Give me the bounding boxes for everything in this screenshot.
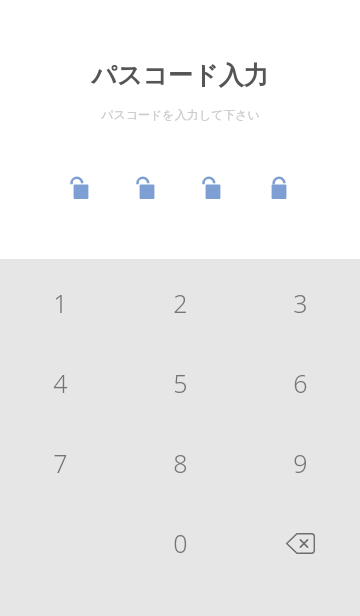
staticText: パスコード入力: [91, 60, 269, 91]
button[interactable]: 3: [240, 263, 360, 343]
button[interactable]: 9: [240, 423, 360, 503]
staticText: 3: [293, 286, 308, 320]
staticText: 9: [293, 446, 308, 480]
button[interactable]: 1: [0, 263, 120, 343]
button[interactable]: 7: [0, 423, 120, 503]
button[interactable]: 4: [0, 343, 120, 423]
staticText: 1: [53, 286, 68, 320]
staticText: 7: [53, 446, 68, 480]
button[interactable]: 5: [120, 343, 240, 423]
staticText: 4: [53, 366, 68, 400]
button[interactable]: 8: [120, 423, 240, 503]
button[interactable]: 6: [240, 343, 360, 423]
button[interactable]: Backspace: [240, 503, 360, 583]
button[interactable]: 2: [120, 263, 240, 343]
button[interactable]: 0: [120, 503, 240, 583]
staticText: 2: [173, 286, 188, 320]
staticText: 0: [173, 526, 188, 560]
staticText: 6: [293, 366, 308, 400]
staticText: パスコードを入力して下さい: [101, 107, 260, 122]
staticText: 8: [173, 446, 188, 480]
staticText: 5: [173, 366, 188, 400]
